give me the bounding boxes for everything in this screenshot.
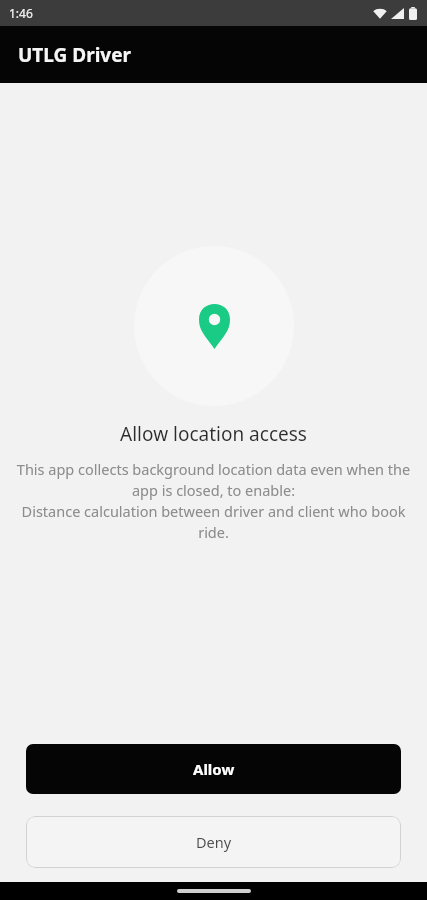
other: Battery (409, 7, 417, 20)
staticText: UTLG Driver (18, 42, 132, 68)
button[interactable]: Deny (26, 816, 401, 868)
other: Cellular signal (391, 8, 404, 19)
staticText: Deny (196, 832, 232, 852)
staticText: Allow location access (120, 421, 307, 447)
button[interactable]: Allow (26, 744, 401, 794)
other: Wi-Fi (373, 8, 387, 19)
staticText: Distance calculation between driver and … (5, 501, 422, 543)
staticText: Allow (193, 759, 235, 779)
staticText: 1:46 (9, 5, 33, 21)
staticText: This app collects background location da… (11, 459, 416, 501)
